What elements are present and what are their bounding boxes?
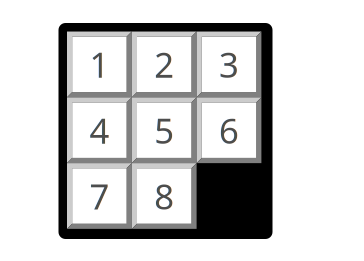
staticText: 6: [219, 107, 239, 153]
button[interactable]: 6: [197, 97, 261, 163]
button[interactable]: 5: [132, 97, 197, 163]
button[interactable]: 3: [197, 31, 261, 97]
button[interactable]: 7: [67, 163, 132, 229]
staticText: 1: [89, 41, 109, 87]
button[interactable]: 2: [132, 31, 197, 97]
button[interactable]: 4: [67, 97, 132, 163]
staticText: 3: [219, 41, 239, 87]
staticText: 4: [89, 107, 109, 153]
staticText: 8: [154, 173, 174, 219]
staticText: 7: [89, 173, 109, 219]
staticText: 2: [154, 41, 174, 87]
button[interactable]: 8: [132, 163, 197, 229]
button[interactable]: 1: [67, 31, 132, 97]
staticText: 5: [154, 107, 174, 153]
